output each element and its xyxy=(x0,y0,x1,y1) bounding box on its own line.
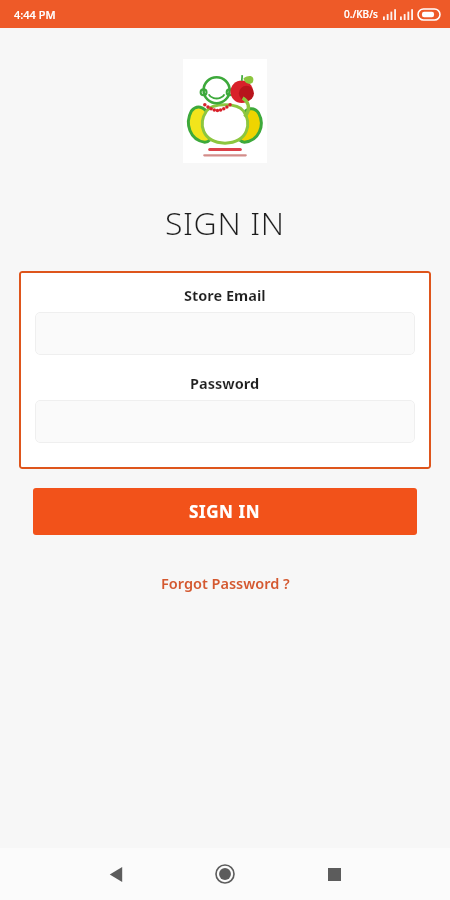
button[interactable]: SIGN IN xyxy=(33,488,417,535)
staticText: SIGN IN xyxy=(189,500,261,523)
staticText: Forgot Password ? xyxy=(161,573,290,593)
staticText: 0./KB/s xyxy=(344,7,378,21)
staticText: 4:44 PM xyxy=(14,7,56,22)
staticText: Store Email xyxy=(184,285,266,305)
staticText: SIGN IN xyxy=(165,201,285,245)
button[interactable]: Back xyxy=(96,854,136,894)
button[interactable]: Recent apps xyxy=(314,854,354,894)
button[interactable]: Home xyxy=(205,854,245,894)
staticText: Password xyxy=(190,373,260,393)
button[interactable]: Forgot Password ? xyxy=(151,568,300,598)
